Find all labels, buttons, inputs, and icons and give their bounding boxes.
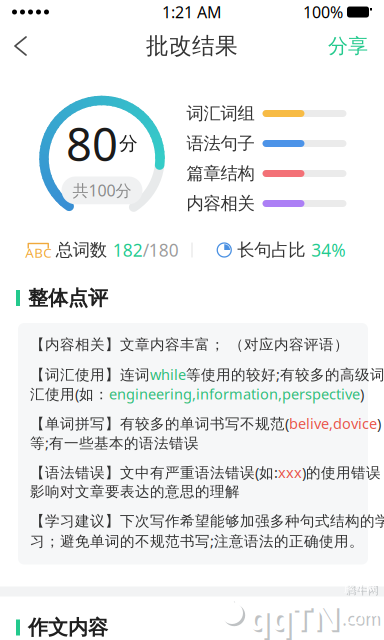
staticText: 80 bbox=[66, 113, 118, 174]
staticText: 100% bbox=[303, 1, 343, 23]
staticText: 共100分 bbox=[72, 179, 131, 201]
staticText: 整体点评 bbox=[28, 285, 108, 311]
staticText: 汇使用(如：engineering,information,perspectiv… bbox=[30, 384, 364, 404]
staticText: 习；避免单词的不规范书写;注意语法的正确使用。 bbox=[30, 531, 364, 551]
staticText: 【语法错误】文中有严重语法错误(如:xxx)的使用错误， bbox=[30, 462, 384, 482]
staticText: 语法句子 bbox=[186, 133, 254, 154]
staticText: /180 bbox=[143, 238, 179, 262]
staticText: 1:21 AM bbox=[162, 1, 222, 23]
staticText: qqTN bbox=[248, 593, 340, 640]
staticText: 分享 bbox=[328, 33, 368, 59]
staticText: 34% bbox=[311, 238, 345, 262]
staticText: 篇章结构 bbox=[186, 163, 254, 184]
staticText: 总词数 bbox=[56, 239, 107, 261]
staticText: 【单词拼写】有较多的单词书写不规范(belive,dovice) bbox=[30, 413, 381, 433]
staticText: 182 bbox=[113, 238, 143, 262]
button[interactable]: 分享 bbox=[312, 24, 384, 68]
staticText: .com bbox=[340, 605, 379, 628]
staticText: 作文内容 bbox=[28, 615, 108, 640]
staticText: 影响对文章要表达的意思的理解 bbox=[30, 483, 240, 501]
staticText: ABC bbox=[25, 243, 51, 262]
staticText: 分 bbox=[119, 132, 138, 155]
staticText: 腾牛网 bbox=[344, 582, 377, 595]
staticText: 批改结果 bbox=[146, 32, 238, 60]
staticText: 【学习建议】下次写作希望能够加强多种句式结构的学 bbox=[30, 512, 384, 530]
staticText: 内容相关 bbox=[186, 193, 254, 214]
staticText: qqTN bbox=[250, 595, 342, 640]
staticText: 【内容相关】文章内容丰富； （对应内容评语） bbox=[30, 336, 349, 354]
staticText: .com bbox=[342, 607, 381, 631]
staticText: 等;有一些基本的语法错误 bbox=[30, 433, 199, 453]
staticText: 长句占比 bbox=[237, 239, 305, 261]
button[interactable]: Back bbox=[0, 24, 44, 68]
staticText: 腾牛网 bbox=[346, 584, 379, 597]
staticText: 【词汇使用】连词while等使用的较好;有较多的高级词 bbox=[30, 364, 384, 384]
staticText: 词汇词组 bbox=[186, 103, 254, 124]
